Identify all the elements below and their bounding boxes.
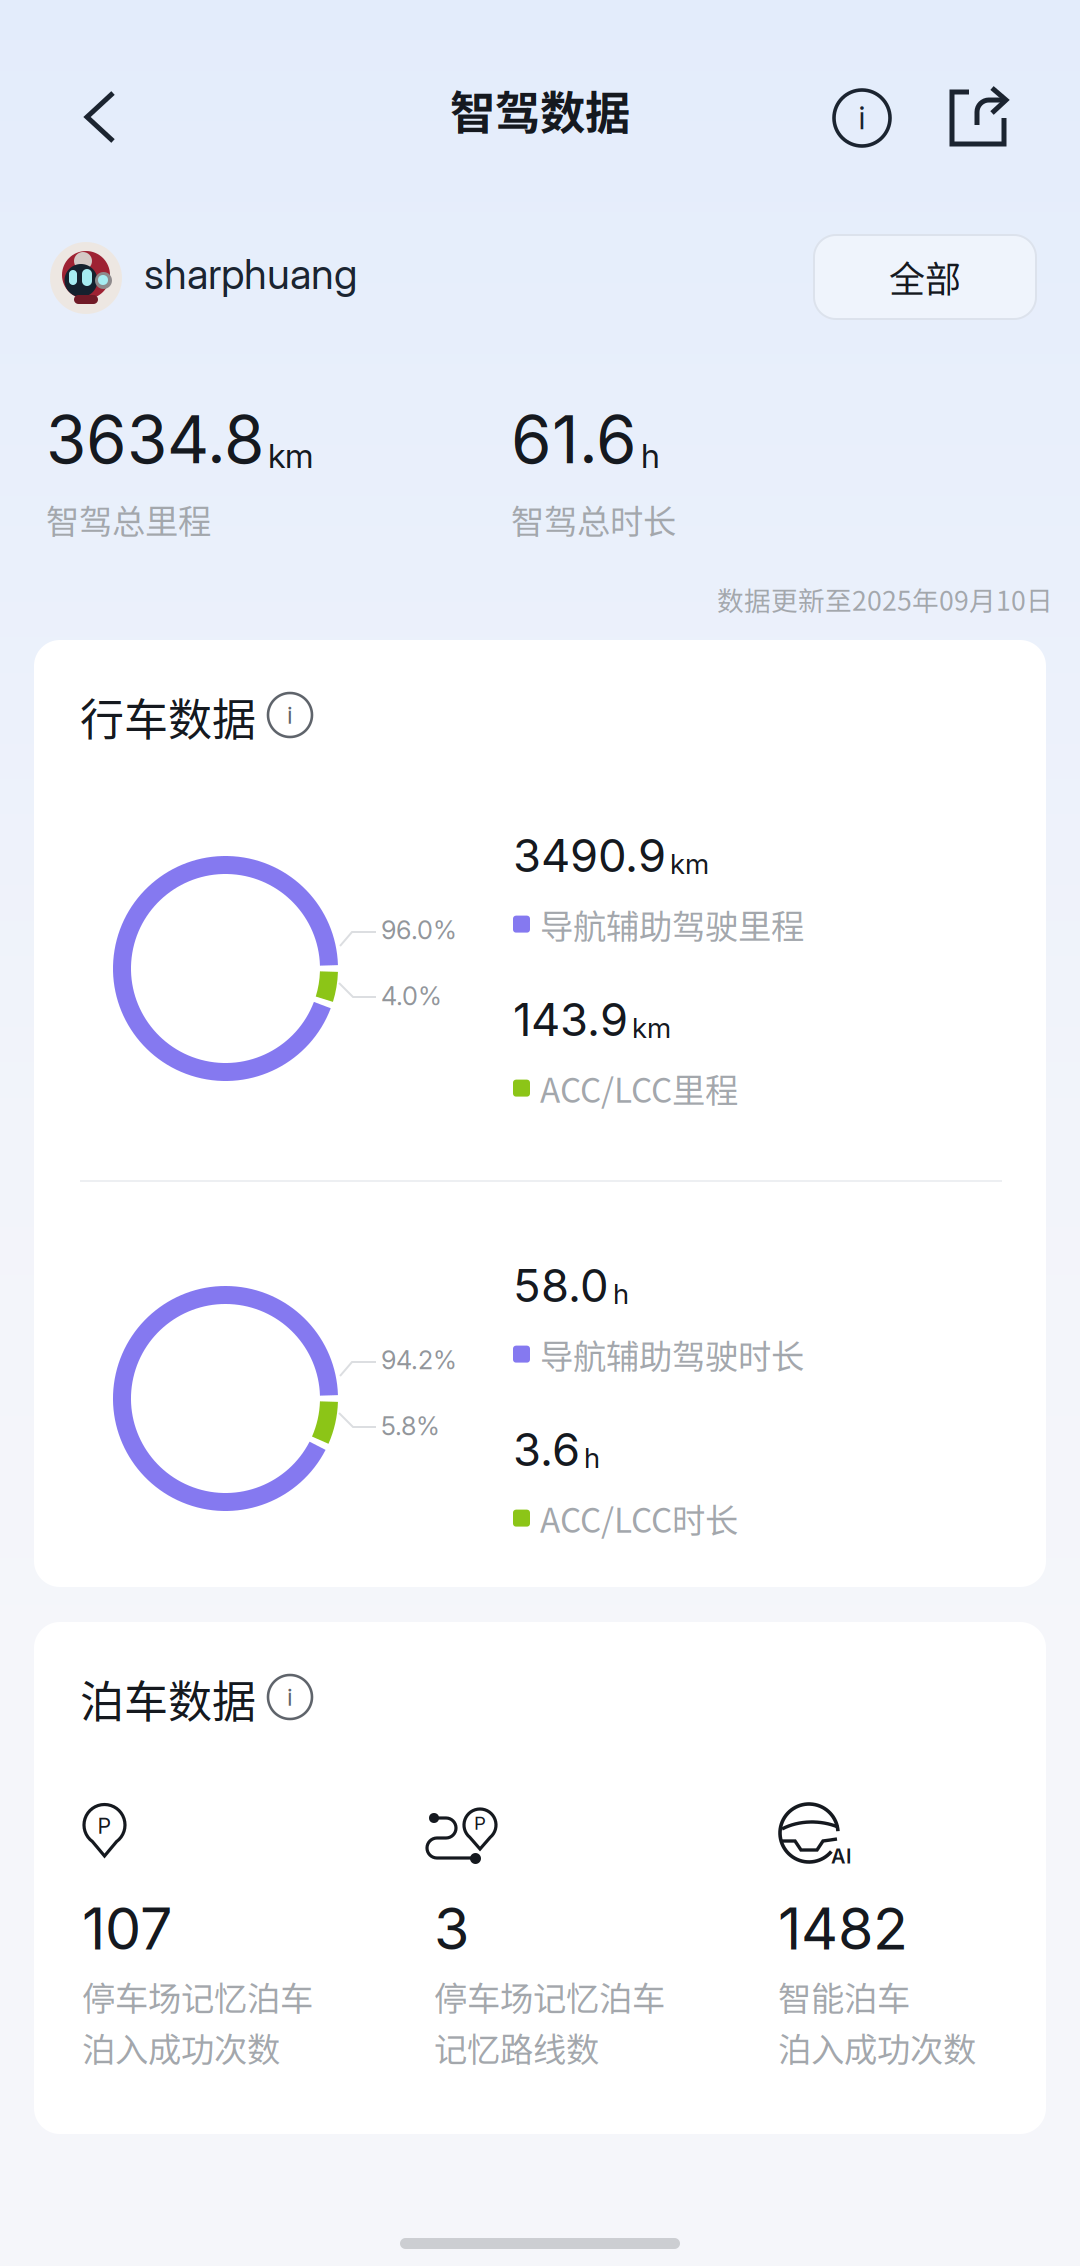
staticText: 61.6	[511, 400, 637, 479]
staticText: 3490.9	[513, 828, 666, 883]
staticText: 停车场记忆泊车	[82, 1972, 313, 2020]
staticText: 全部	[889, 251, 961, 303]
button[interactable]: Back	[52, 74, 148, 162]
staticText: i	[287, 1682, 293, 1711]
staticText: 泊入成功次数	[82, 2023, 280, 2071]
staticText: 行车数据	[80, 685, 256, 749]
staticText: ACC/LCC时长	[540, 1494, 738, 1542]
staticText: i	[287, 700, 293, 729]
staticText: h	[613, 1277, 629, 1311]
staticText: km	[632, 1011, 671, 1045]
staticText: 143.9	[513, 992, 628, 1047]
staticText: 96.0%	[381, 915, 457, 945]
staticText: 智能泊车	[778, 1972, 910, 2020]
staticText: 3.6	[513, 1422, 580, 1477]
staticText: 智驾总里程	[46, 495, 211, 543]
staticText: 数据更新至2025年09月10日	[717, 580, 1053, 618]
staticText: 智驾总时长	[511, 495, 676, 543]
button[interactable]: Info	[818, 74, 906, 162]
staticText: i	[858, 99, 865, 136]
staticText: P	[97, 1813, 111, 1839]
staticText: 94.2%	[381, 1345, 457, 1375]
staticText: 导航辅助驾驶里程	[540, 900, 804, 948]
staticText: 4.0%	[381, 981, 442, 1011]
staticText: 智驾数据	[450, 77, 630, 143]
staticText: 58.0	[513, 1258, 609, 1313]
button[interactable]: 全部	[814, 235, 1036, 319]
button[interactable]: Share	[928, 74, 1024, 162]
staticText: 泊车数据	[80, 1667, 256, 1731]
staticText: 停车场记忆泊车	[434, 1972, 665, 2020]
staticText: 3	[434, 1894, 469, 1963]
staticText: 3634.8	[46, 400, 264, 479]
staticText: km	[268, 436, 313, 476]
staticText: 5.8%	[381, 1411, 440, 1441]
staticText: h	[584, 1441, 600, 1475]
staticText: 1482	[778, 1894, 908, 1963]
staticText: ACC/LCC里程	[540, 1064, 738, 1112]
staticText: 记忆路线数	[434, 2023, 599, 2071]
staticText: km	[670, 847, 709, 881]
staticText: 泊入成功次数	[778, 2023, 976, 2071]
staticText: AI	[831, 1844, 852, 1868]
staticText: 107	[82, 1894, 172, 1963]
staticText: P	[474, 1812, 486, 1834]
staticText: h	[641, 436, 660, 476]
staticText: sharphuang	[144, 249, 357, 299]
staticText: 导航辅助驾驶时长	[540, 1330, 804, 1378]
